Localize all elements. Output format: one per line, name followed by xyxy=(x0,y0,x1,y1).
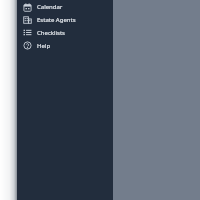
button[interactable]: Estate Agents xyxy=(17,13,113,26)
button[interactable]: Calendar xyxy=(17,0,113,13)
staticText: Checklists xyxy=(37,29,65,37)
staticText: Help xyxy=(37,42,51,50)
button[interactable]: Checklists xyxy=(17,26,113,39)
staticText: Calendar xyxy=(37,3,63,11)
staticText: Estate Agents xyxy=(37,16,76,24)
button[interactable]: Help xyxy=(17,39,113,52)
button[interactable]: Close navigation drawer xyxy=(0,0,200,200)
